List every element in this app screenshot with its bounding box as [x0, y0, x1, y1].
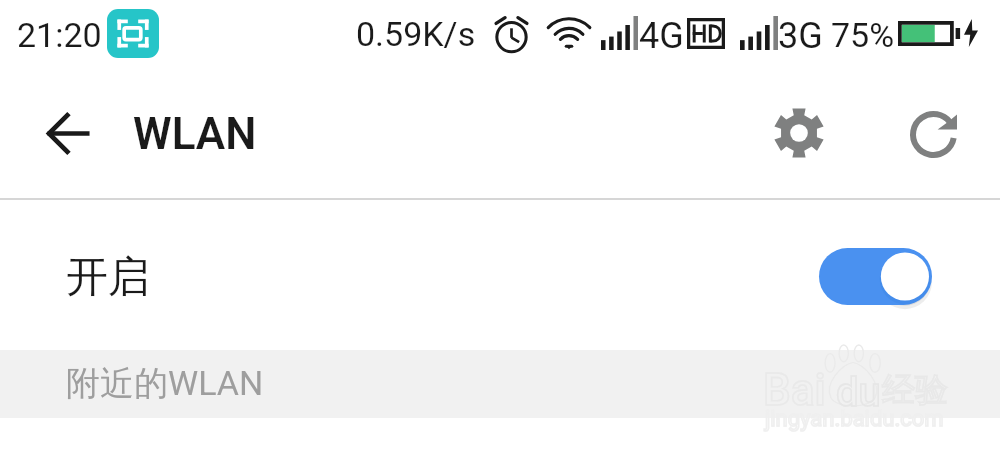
button[interactable]: Toggle WLAN	[819, 248, 932, 305]
button[interactable]: Scan QR code	[107, 9, 159, 58]
staticText: 附近的WLAN	[66, 362, 264, 405]
staticText: 开启	[66, 251, 150, 304]
button[interactable]: Settings	[763, 97, 835, 169]
staticText: 0.59K/s	[356, 14, 476, 54]
staticText: 3G	[778, 15, 823, 57]
staticText: 经验	[882, 369, 948, 411]
staticText: jingyan.baidu.com	[765, 406, 944, 432]
staticText: 21:20	[17, 15, 102, 55]
staticText: 75%	[831, 15, 895, 55]
button[interactable]: 开启	[0, 200, 1000, 350]
button[interactable]: Refresh	[897, 98, 969, 170]
staticText: WLAN	[133, 108, 257, 160]
staticText: du	[836, 369, 881, 416]
staticText: 4G	[639, 15, 684, 57]
button[interactable]: Back	[31, 97, 103, 169]
